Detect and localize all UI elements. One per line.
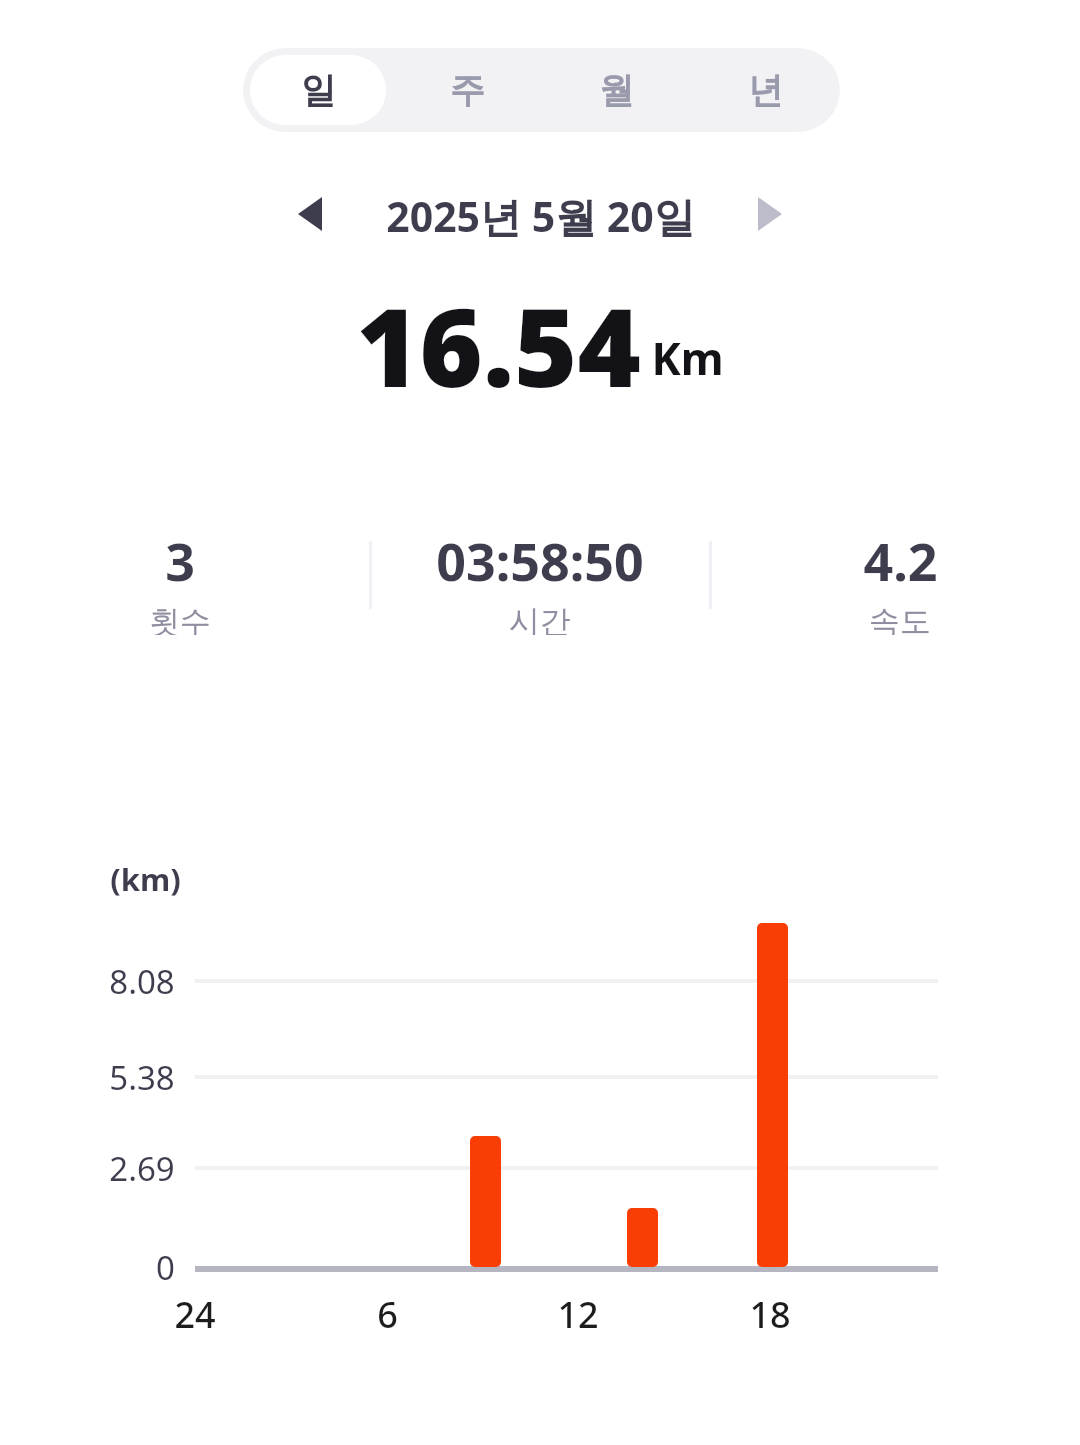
- staticText: (km): [110, 858, 181, 900]
- button[interactable]: Previous day: [282, 186, 338, 242]
- staticText: 3: [165, 525, 195, 596]
- staticText: 24: [174, 1290, 216, 1339]
- button[interactable]: 년: [698, 55, 833, 125]
- staticText: 년: [748, 68, 783, 112]
- button[interactable]: 일: [250, 55, 386, 125]
- staticText: Km: [651, 328, 724, 388]
- button[interactable]: 3: [0, 515, 360, 635]
- staticText: 2.69: [109, 1146, 175, 1191]
- staticText: 18: [749, 1290, 791, 1339]
- button[interactable]: Next day: [742, 186, 798, 242]
- staticText: 월: [599, 68, 634, 112]
- staticText: 16.54: [356, 272, 641, 402]
- staticText: 횟수: [149, 602, 211, 635]
- staticText: 8.08: [109, 959, 175, 1004]
- staticText: 12: [557, 1290, 599, 1339]
- staticText: 4.2: [863, 525, 938, 596]
- staticText: 시간: [509, 602, 571, 635]
- staticText: 일: [301, 68, 336, 112]
- button[interactable]: 월: [549, 55, 684, 125]
- staticText: 속도: [869, 602, 931, 635]
- staticText: 2025년 5월 20일: [386, 188, 695, 244]
- staticText: 5.38: [109, 1055, 175, 1100]
- staticText: 6: [377, 1290, 398, 1339]
- button[interactable]: 03:58:50: [360, 515, 720, 635]
- staticText: 주: [450, 68, 485, 112]
- staticText: 03:58:50: [436, 525, 644, 596]
- staticText: 0: [156, 1245, 175, 1290]
- button[interactable]: 주: [400, 55, 535, 125]
- button[interactable]: 4.2: [720, 515, 1080, 635]
